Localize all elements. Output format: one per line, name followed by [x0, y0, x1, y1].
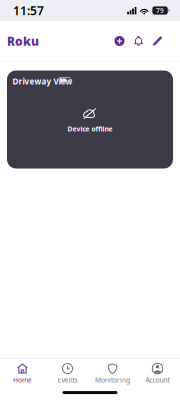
staticText: Events — [57, 376, 77, 384]
staticText: 11:57 — [13, 2, 44, 18]
button[interactable]: Add device — [111, 31, 128, 51]
button[interactable]: Notifications — [130, 31, 147, 51]
button[interactable]: Account — [135, 363, 180, 383]
staticText: 79 — [156, 6, 164, 15]
button[interactable]: Monitoring — [90, 363, 135, 383]
staticText: Device offline — [67, 124, 112, 133]
button[interactable]: Events — [45, 363, 90, 383]
staticText: Roku — [7, 33, 39, 49]
staticText: Driveway View — [12, 76, 72, 87]
button[interactable]: Home — [0, 363, 45, 383]
staticText: Account — [145, 376, 169, 384]
button[interactable]: Edit — [149, 31, 166, 51]
staticText: Home — [13, 376, 32, 384]
staticText: Monitoring — [95, 376, 130, 384]
